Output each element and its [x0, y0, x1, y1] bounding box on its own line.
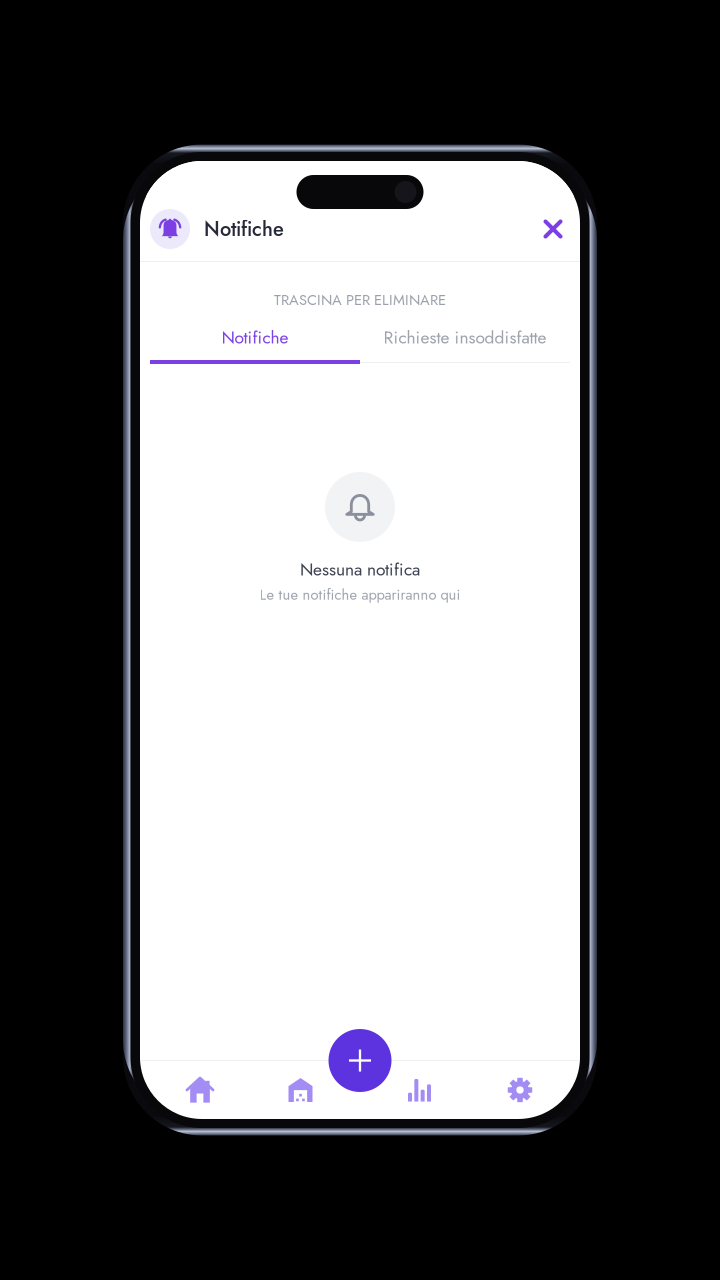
staticText: Notifiche: [221, 325, 288, 350]
button[interactable]: Aggiungi: [328, 1029, 391, 1092]
staticText: Richieste insoddisfatte: [383, 325, 546, 350]
button[interactable]: Statistiche: [391, 1066, 447, 1114]
staticText: Nessuna notifica: [300, 557, 420, 582]
staticText: Le tue notifiche appariranno qui: [259, 584, 460, 605]
button[interactable]: Notifiche: [150, 209, 284, 249]
button[interactable]: Home: [172, 1066, 228, 1114]
button[interactable]: Impostazioni: [492, 1066, 548, 1114]
button[interactable]: Chiudi: [535, 211, 571, 247]
button[interactable]: Notifiche: [150, 315, 360, 364]
staticText: Notifiche: [204, 214, 284, 243]
button[interactable]: Magazzino: [272, 1066, 328, 1114]
staticText: TRASCINA PER ELIMINARE: [274, 289, 446, 311]
button[interactable]: Richieste insoddisfatte: [360, 315, 570, 364]
